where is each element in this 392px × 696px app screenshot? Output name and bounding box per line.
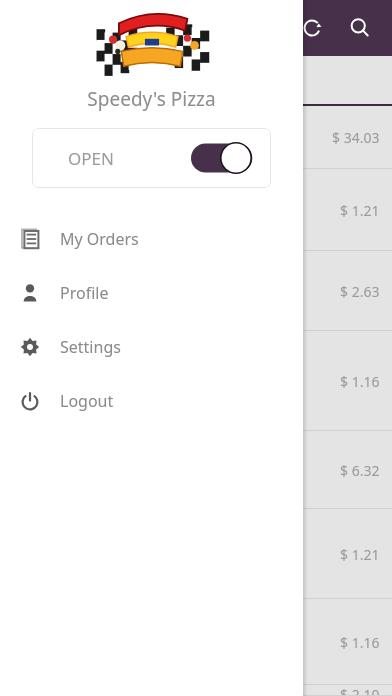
staticText: Logout bbox=[60, 390, 114, 412]
staticText: $ 2.10 bbox=[340, 685, 380, 696]
staticText: My Orders bbox=[60, 228, 139, 250]
staticText: (10/17) bbox=[12, 386, 48, 401]
staticText: Settings bbox=[60, 336, 121, 358]
button[interactable]: My Orders bbox=[0, 212, 303, 266]
button[interactable]: Order #1820 Completed bbox=[0, 685, 392, 696]
staticText: (10/17) bbox=[12, 296, 48, 311]
button[interactable]: Order #1820 Completed bbox=[0, 431, 392, 509]
staticText: (10/17) bbox=[12, 142, 48, 157]
button[interactable]: Order #1820 Completed bbox=[0, 599, 392, 685]
button[interactable]: Order #1820 Completed bbox=[0, 331, 392, 431]
button[interactable]: Order #1820 Completed bbox=[0, 169, 392, 251]
button[interactable]: Refresh bbox=[288, 4, 336, 52]
button[interactable]: Show All bbox=[0, 56, 392, 106]
button[interactable]: Logout bbox=[0, 374, 303, 428]
staticText: Order #1820 Completed bbox=[12, 118, 160, 136]
staticText: $ 1.16 bbox=[340, 633, 380, 652]
staticText: $ 6.32 bbox=[340, 461, 380, 480]
staticText: (10/17) bbox=[12, 215, 48, 230]
staticText: $ 2.63 bbox=[340, 282, 380, 301]
button[interactable]: Settings bbox=[0, 320, 303, 374]
staticText: OPEN bbox=[68, 147, 114, 170]
staticText: $ 34.03 bbox=[332, 128, 380, 147]
staticText: Profile bbox=[60, 282, 109, 304]
button[interactable]: Profile bbox=[0, 266, 303, 320]
button[interactable]: Order #1820 Completed bbox=[0, 251, 392, 331]
button[interactable]: OPEN bbox=[32, 128, 271, 188]
button[interactable]: Search bbox=[336, 4, 384, 52]
button[interactable]: Order #1820 Completed bbox=[0, 106, 392, 169]
staticText: $ 1.16 bbox=[340, 372, 380, 391]
staticText: Speedy's Pizza bbox=[87, 86, 216, 112]
button[interactable]: Order #1820 Completed bbox=[0, 509, 392, 599]
staticText: $ 1.21 bbox=[340, 545, 380, 564]
staticText: Order #1820 Completed bbox=[12, 272, 160, 290]
staticText: $ 1.21 bbox=[340, 201, 380, 220]
